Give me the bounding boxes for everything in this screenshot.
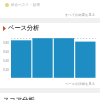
staticText: 0.20	[3, 68, 10, 72]
staticText: 総合ベスト・効果	[11, 3, 41, 8]
staticText: ベースの詳細を見る	[65, 82, 96, 86]
button[interactable]: ベースの詳細を見る	[0, 80, 96, 87]
staticText: スコア分析	[3, 96, 35, 100]
button[interactable]: スコア分析	[3, 96, 35, 100]
button[interactable]: ベース分析	[3, 23, 40, 33]
button[interactable]: 総合ベスト・効果	[5, 0, 100, 10]
staticText: ベース分析	[8, 24, 40, 32]
staticText: すべての結果を見る	[65, 13, 96, 17]
staticText: 0.80	[3, 41, 10, 45]
staticText: 0.40	[3, 59, 10, 63]
button[interactable]: すべての結果を見る	[0, 11, 96, 18]
staticText: 0.60	[3, 50, 10, 54]
